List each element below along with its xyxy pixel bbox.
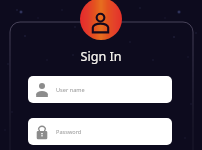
button[interactable]: Password <box>28 118 172 145</box>
staticText: Password <box>56 128 82 136</box>
button[interactable]: User name <box>28 76 172 103</box>
button[interactable]: Profile <box>80 0 122 40</box>
staticText: User name <box>56 86 85 94</box>
staticText: Sign In <box>80 48 122 65</box>
